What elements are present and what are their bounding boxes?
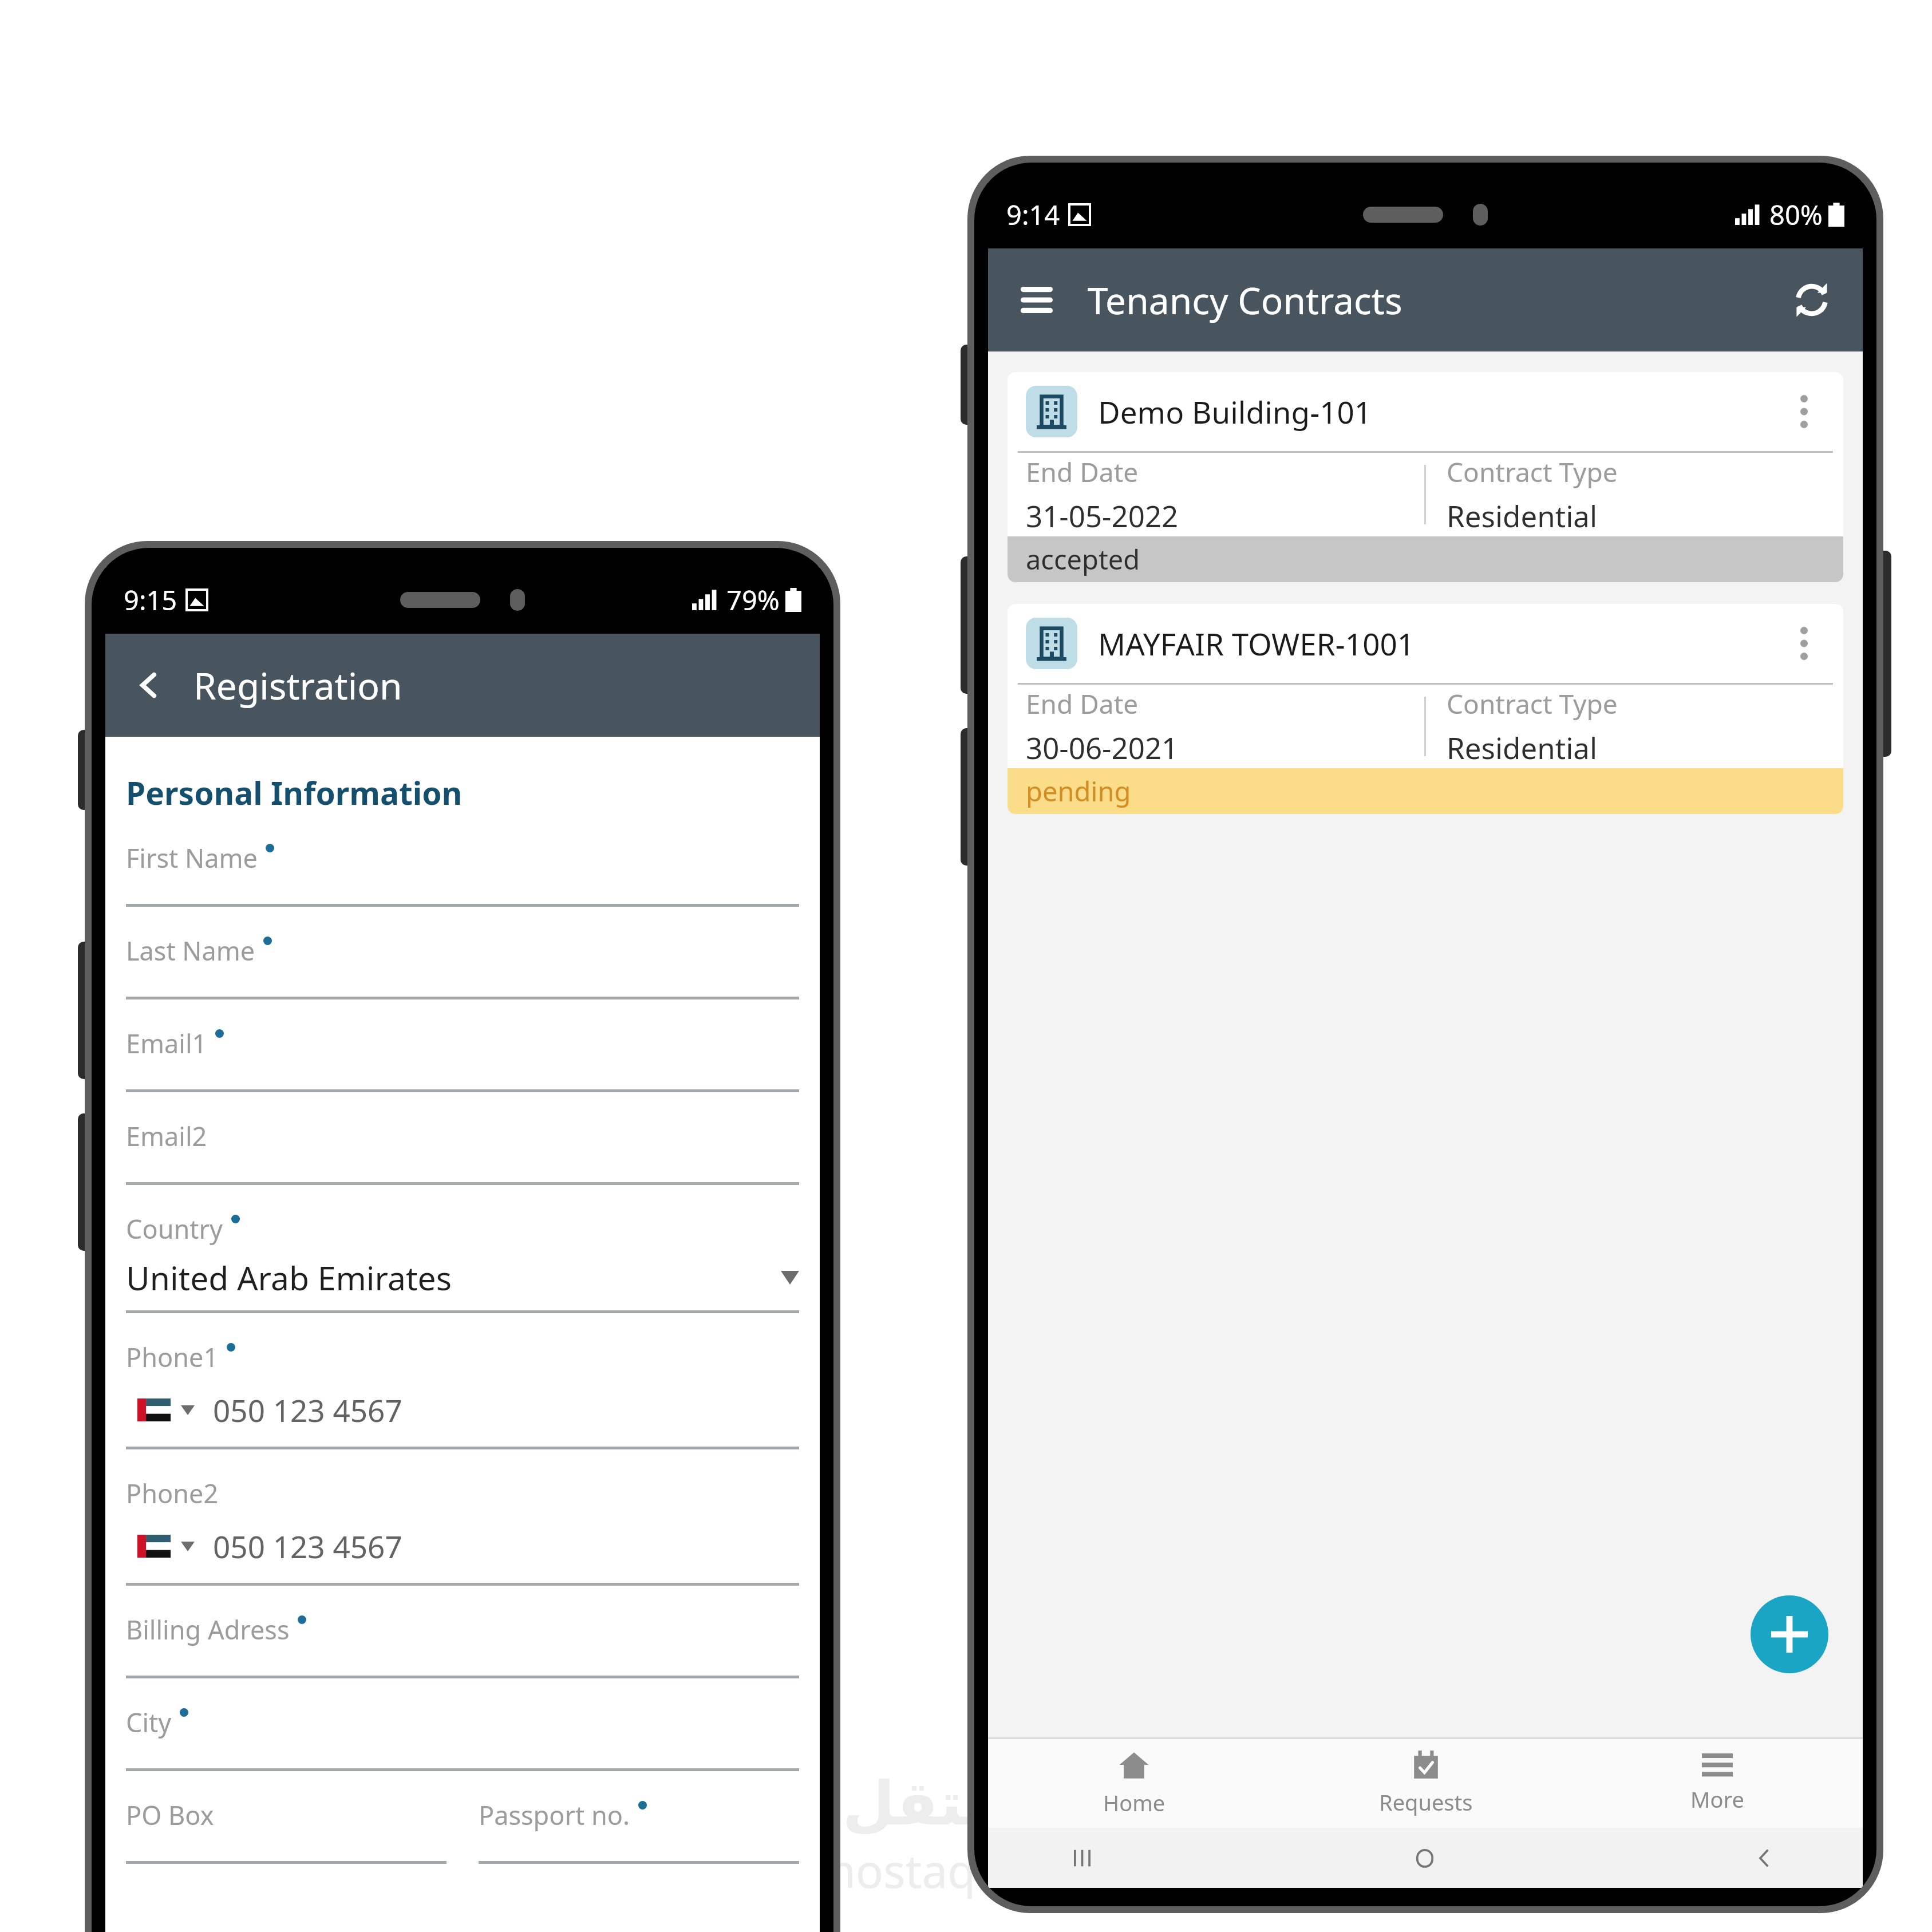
staticText: More [1690, 1784, 1744, 1814]
button[interactable]: Phone2 [126, 1449, 799, 1586]
button[interactable]: First Name [126, 814, 799, 907]
staticText: 050 123 4567 [213, 1526, 402, 1567]
staticText: Home [1103, 1788, 1165, 1818]
staticText: 79% [726, 582, 780, 618]
staticText: Requests [1379, 1787, 1473, 1817]
staticText: Tenancy Contracts [1088, 275, 1402, 325]
button[interactable]: Country [126, 1185, 799, 1313]
staticText: First Name [126, 840, 258, 875]
button[interactable]: Email2 [126, 1092, 799, 1185]
staticText: Phone2 [126, 1476, 219, 1511]
button[interactable]: MAYFAIR TOWER-1001 [1008, 604, 1843, 814]
button[interactable]: Requests [1280, 1739, 1571, 1828]
staticText: 31-05-2022 [1026, 496, 1179, 535]
staticText: Country [126, 1211, 223, 1246]
staticText: Contract Type [1447, 454, 1618, 490]
button[interactable]: Add new contract [1751, 1595, 1828, 1673]
staticText: United Arab Emirates [126, 1255, 452, 1300]
button[interactable]: Back [126, 662, 172, 708]
staticText: مستقل [843, 1769, 1063, 1839]
staticText: Email1 [126, 1026, 207, 1061]
staticText: Last Name [126, 933, 255, 968]
button[interactable]: PO Box [126, 1771, 447, 1864]
button[interactable]: Passport no. [479, 1771, 799, 1864]
button[interactable]: Refresh [1785, 273, 1839, 327]
button[interactable]: More [1571, 1739, 1863, 1828]
staticText: Registration [193, 661, 402, 710]
button[interactable]: Phone1 [126, 1313, 799, 1449]
staticText: 9:14 [1006, 196, 1060, 233]
staticText: Phone1 [126, 1340, 219, 1374]
staticText: 80% [1769, 196, 1823, 233]
staticText: 30-06-2021 [1026, 728, 1179, 767]
button[interactable]: City [126, 1678, 799, 1771]
button[interactable]: Home [988, 1739, 1280, 1828]
staticText: Passport no. [479, 1797, 630, 1832]
button[interactable]: Demo Building-101 [1008, 372, 1843, 582]
staticText: accepted [1026, 541, 1140, 578]
staticText: Billing Adress [126, 1612, 290, 1647]
staticText: End Date [1026, 454, 1139, 490]
staticText: Contract Type [1447, 686, 1618, 722]
staticText: mostaql.com [813, 1839, 1093, 1901]
staticText: Personal Information [126, 771, 463, 814]
button[interactable]: More options for Demo Building-101 [1783, 390, 1825, 433]
staticText: City [126, 1705, 172, 1740]
staticText: Residential [1447, 728, 1598, 767]
staticText: 9:15 [124, 582, 177, 618]
button[interactable]: Email1 [126, 999, 799, 1092]
staticText: MAYFAIR TOWER-1001 [1098, 623, 1415, 664]
button[interactable]: More options for MAYFAIR TOWER-1001 [1783, 622, 1825, 665]
staticText: Demo Building-101 [1098, 391, 1372, 432]
staticText: 050 123 4567 [213, 1389, 402, 1431]
staticText: pending [1026, 773, 1131, 809]
staticText: Email2 [126, 1119, 207, 1153]
staticText: Residential [1447, 496, 1598, 535]
button[interactable]: Open navigation menu [1012, 275, 1061, 325]
staticText: PO Box [126, 1797, 214, 1832]
button[interactable]: Last Name [126, 907, 799, 999]
staticText: End Date [1026, 686, 1139, 722]
button[interactable]: Billing Adress [126, 1586, 799, 1678]
